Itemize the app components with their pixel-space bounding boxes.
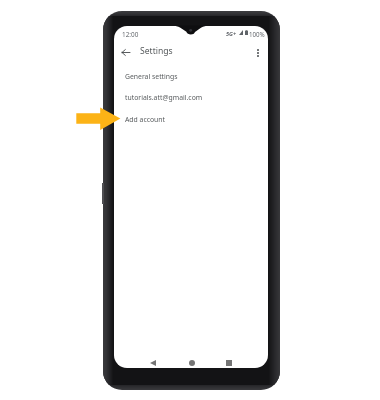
button[interactable]: Back <box>144 355 161 368</box>
staticText: 5G+ <box>226 30 237 38</box>
button[interactable]: General settings <box>114 66 268 87</box>
staticText: General settings <box>125 72 178 81</box>
button[interactable]: Home <box>183 355 200 368</box>
staticText: 100% <box>249 30 265 38</box>
staticText: Add account <box>125 115 166 124</box>
button[interactable]: Recent apps <box>220 355 237 368</box>
button[interactable]: Add account <box>114 109 268 130</box>
staticText: tutorials.att@gmail.com <box>125 93 203 102</box>
button[interactable]: tutorials.att@gmail.com <box>114 87 268 108</box>
staticText: Settings <box>140 45 173 57</box>
button[interactable]: More options <box>248 43 268 63</box>
staticText: 12:00 <box>122 30 139 39</box>
button[interactable]: Navigate up <box>114 40 138 64</box>
